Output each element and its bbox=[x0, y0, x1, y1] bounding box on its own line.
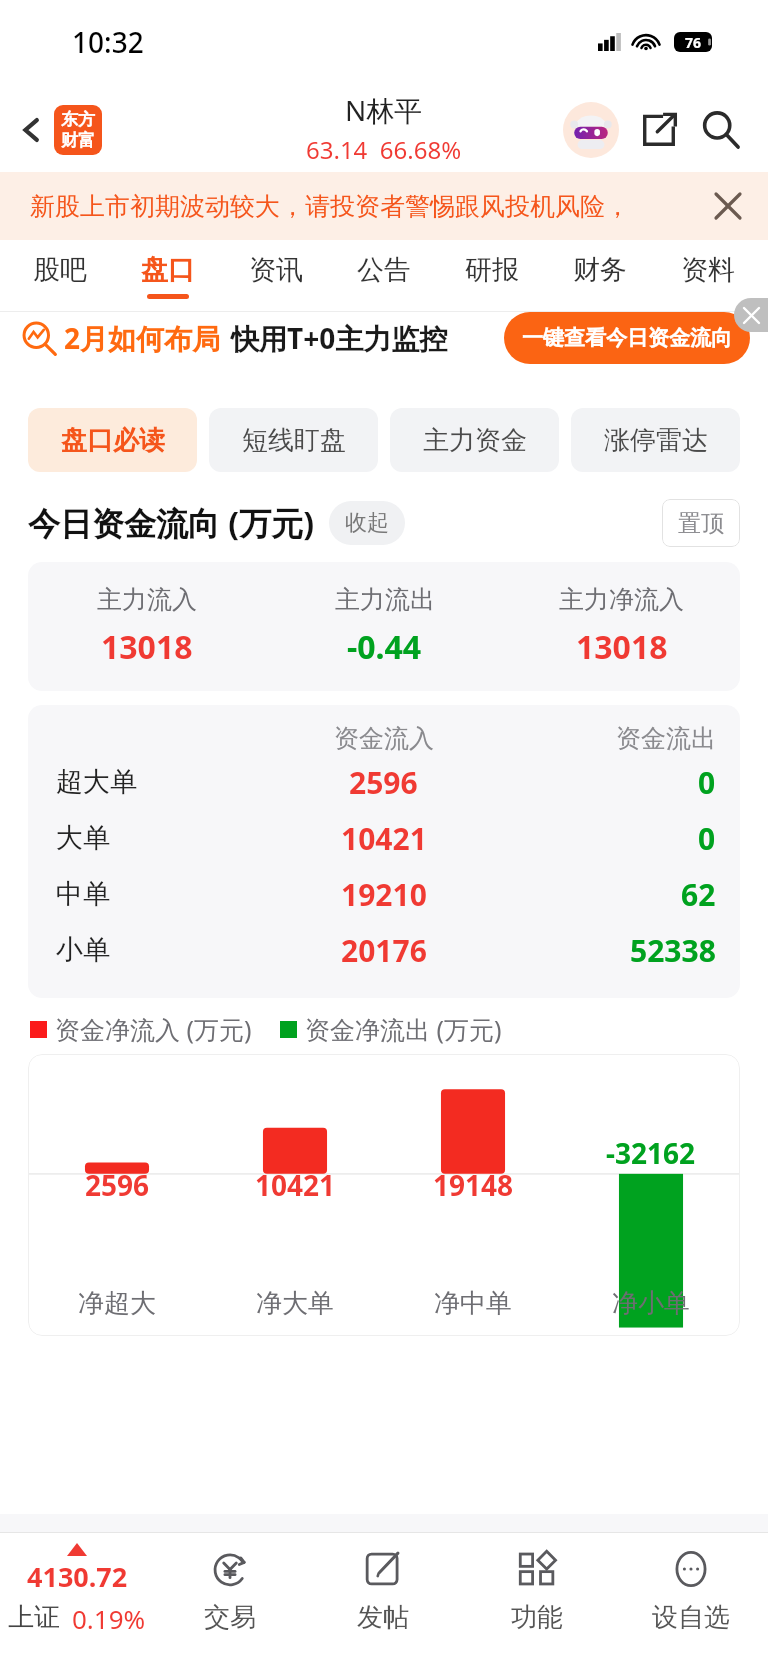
staticText: 13018 bbox=[576, 625, 668, 669]
button[interactable]: 收起 bbox=[329, 501, 405, 545]
staticText: 东方 bbox=[61, 109, 95, 130]
staticText: 财富 bbox=[61, 130, 95, 151]
staticText: N林平 bbox=[345, 91, 423, 129]
button[interactable]: Search bbox=[692, 101, 750, 159]
staticText: 资金流出 bbox=[616, 723, 716, 754]
staticText: 0 bbox=[698, 762, 716, 803]
button[interactable]: 置顶 bbox=[662, 499, 740, 547]
staticText: -0.44 bbox=[347, 625, 422, 669]
button[interactable]: Watchlist settings bbox=[614, 1533, 768, 1663]
button[interactable]: Close notice bbox=[704, 182, 752, 230]
button[interactable]: Back bbox=[6, 104, 58, 156]
staticText: 主力资金 bbox=[423, 424, 527, 457]
staticText: 0.19% bbox=[72, 1601, 146, 1636]
button[interactable]: 主力流入 bbox=[28, 562, 740, 691]
staticText: 10:32 bbox=[72, 23, 144, 61]
staticText: 主力流出 bbox=[335, 584, 435, 615]
button[interactable]: 4130.72 bbox=[0, 1533, 153, 1663]
staticText: 10421 bbox=[341, 818, 427, 859]
staticText: 研报 bbox=[465, 253, 519, 287]
staticText: 净超大 bbox=[78, 1287, 156, 1320]
staticText: 资金净流入 (万元) bbox=[55, 1012, 252, 1046]
button[interactable]: 研报 bbox=[438, 240, 546, 312]
staticText: 19148 bbox=[433, 1166, 514, 1204]
staticText: 新股上市初期波动较大，请投资者警惕跟风投机风险， bbox=[30, 191, 630, 222]
button[interactable]: Features bbox=[460, 1533, 614, 1663]
staticText: 4130.72 bbox=[27, 1558, 128, 1595]
staticText: -32162 bbox=[606, 1134, 696, 1172]
button[interactable]: 公告 bbox=[330, 240, 438, 312]
button[interactable]: Trade bbox=[153, 1533, 306, 1663]
button[interactable]: 资金流入 bbox=[28, 705, 740, 998]
staticText: 0 bbox=[698, 818, 716, 859]
staticText: 10421 bbox=[255, 1166, 336, 1204]
staticText: 小单 bbox=[56, 933, 110, 967]
staticText: 76 bbox=[685, 33, 702, 52]
staticText: 资金流入 bbox=[334, 723, 434, 754]
staticText: 大单 bbox=[56, 821, 110, 855]
button[interactable]: 资料 bbox=[654, 240, 762, 312]
staticText: 涨停雷达 bbox=[604, 424, 708, 457]
button[interactable]: 涨停雷达 bbox=[571, 408, 740, 472]
staticText: 2596 bbox=[349, 762, 418, 803]
staticText: 20176 bbox=[341, 930, 427, 971]
staticText: 快用T+0主力监控 bbox=[231, 319, 448, 357]
staticText: 发帖 bbox=[357, 1601, 409, 1634]
staticText: 设自选 bbox=[652, 1601, 730, 1634]
staticText: 13018 bbox=[101, 625, 193, 669]
staticText: 净小单 bbox=[612, 1287, 690, 1320]
staticText: 19210 bbox=[341, 874, 427, 915]
button[interactable]: 股吧 bbox=[6, 240, 114, 312]
button[interactable]: 财务 bbox=[546, 240, 654, 312]
button[interactable]: 资讯 bbox=[222, 240, 330, 312]
staticText: 2月如何布局 bbox=[64, 319, 221, 357]
button[interactable]: Post bbox=[306, 1533, 460, 1663]
staticText: 功能 bbox=[511, 1601, 563, 1634]
button[interactable]: 主力资金 bbox=[390, 408, 559, 472]
button[interactable]: Share bbox=[630, 101, 688, 159]
staticText: 主力净流入 bbox=[559, 584, 684, 615]
staticText: 主力流入 bbox=[97, 584, 197, 615]
button[interactable]: 一键查看今日资金流向 bbox=[504, 312, 750, 364]
button[interactable]: AI assistant bbox=[560, 99, 622, 161]
staticText: 净大单 bbox=[256, 1287, 334, 1320]
staticText: 股吧 bbox=[33, 253, 87, 287]
staticText: 中单 bbox=[56, 877, 110, 911]
staticText: 短线盯盘 bbox=[242, 424, 346, 457]
staticText: 资料 bbox=[681, 253, 735, 287]
staticText: 资讯 bbox=[249, 253, 303, 287]
staticText: 收起 bbox=[345, 509, 389, 537]
staticText: 2596 bbox=[85, 1166, 150, 1204]
staticText: 63.14 66.68% bbox=[306, 133, 462, 166]
staticText: 今日资金流向 (万元) bbox=[28, 501, 315, 545]
staticText: 盘口 bbox=[141, 253, 195, 287]
button[interactable]: 盘口 bbox=[114, 240, 222, 312]
staticText: 净中单 bbox=[434, 1287, 512, 1320]
button[interactable]: 2596 bbox=[28, 1054, 740, 1336]
staticText: 交易 bbox=[204, 1601, 256, 1634]
staticText: 一键查看今日资金流向 bbox=[522, 325, 732, 351]
button[interactable]: Close ad bbox=[734, 298, 768, 332]
staticText: 财务 bbox=[573, 253, 627, 287]
staticText: 资金净流出 (万元) bbox=[305, 1012, 502, 1046]
button[interactable]: 短线盯盘 bbox=[209, 408, 378, 472]
staticText: 公告 bbox=[357, 253, 411, 287]
staticText: 置顶 bbox=[678, 509, 724, 538]
staticText: 52338 bbox=[630, 930, 716, 971]
button[interactable]: 东方 bbox=[54, 105, 102, 155]
staticText: 超大单 bbox=[56, 765, 137, 799]
button[interactable]: 盘口必读 bbox=[28, 408, 197, 472]
staticText: 上证 bbox=[8, 1601, 60, 1634]
staticText: 62 bbox=[681, 874, 716, 915]
staticText: 盘口必读 bbox=[61, 424, 165, 457]
